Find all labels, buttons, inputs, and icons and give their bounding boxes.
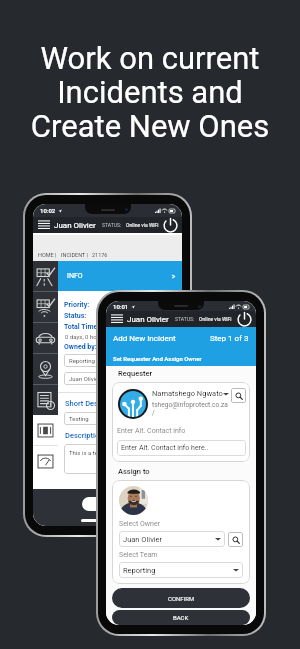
button[interactable]: Custom (82, 497, 134, 511)
button[interactable]: Select Owner (112, 480, 250, 584)
button[interactable]: Menu (106, 311, 256, 327)
staticText: Reporting (123, 566, 156, 575)
button[interactable]: Namatshego Ngwato (112, 382, 250, 462)
staticText: HOME | (38, 252, 57, 258)
button[interactable]: Menu (38, 220, 50, 230)
button[interactable]: Add New Incident (106, 327, 256, 350)
button[interactable]: CONFIRM (112, 588, 250, 608)
staticText: Online via WiFi (199, 316, 232, 322)
staticText: Work on current Incidents and Create New… (0, 40, 300, 144)
staticText: Juan Olivier (127, 315, 169, 324)
button[interactable]: Nav item (33, 292, 58, 322)
staticText: Juan Olivier (69, 375, 101, 382)
staticText: Testing (69, 415, 89, 422)
staticText: Set Requester And Assign Owner (113, 355, 202, 362)
button[interactable]: Nav item (33, 261, 58, 291)
staticText: Juan Olivier (123, 535, 163, 544)
staticText: STATUS: (175, 316, 195, 322)
staticText: This is a test (69, 449, 103, 456)
button[interactable]: Reporting (64, 354, 176, 367)
staticText: INCIDENT | (61, 252, 88, 258)
staticText: Requester (118, 369, 153, 378)
staticText: Step 1 of 3 (210, 334, 249, 343)
staticText: Select Team (119, 551, 158, 559)
button[interactable]: Nav item (33, 385, 58, 415)
staticText: Juan Olivier (54, 221, 96, 230)
button[interactable]: Juan Olivier (64, 372, 176, 385)
staticText: Status: (64, 312, 87, 320)
button[interactable]: Search (228, 532, 243, 547)
button[interactable]: Power (162, 217, 178, 233)
button[interactable]: This is a test (64, 444, 176, 474)
button[interactable]: Menu (33, 217, 182, 233)
staticText: Reporting (69, 357, 95, 364)
button[interactable]: Testing (64, 412, 176, 425)
staticText: / (152, 409, 155, 417)
staticText: Description: (65, 431, 106, 440)
staticText: Enter Alt. Contact info (117, 427, 186, 435)
button[interactable]: Enter Alt. Contact info here.. (117, 440, 246, 456)
button[interactable]: Nav item (33, 415, 58, 445)
button[interactable]: Nav item (33, 354, 58, 384)
staticText: 0 days, 0 hours, 2 m (65, 333, 118, 340)
staticText: CONFIRM (168, 595, 195, 602)
staticText: Enter Alt. Contact info here.. (121, 444, 209, 452)
staticText: STATUS: (102, 222, 122, 228)
staticText: INFO (67, 272, 83, 280)
staticText: Total Time: (64, 323, 100, 331)
button[interactable]: Menu (111, 314, 123, 324)
staticText: Custom (98, 501, 119, 508)
staticText: tshego@infoprotect.co.za (152, 401, 228, 409)
button[interactable]: BACK (112, 610, 250, 625)
staticText: Add New Incident (113, 334, 176, 343)
staticText: Assign to (118, 467, 150, 476)
staticText: Priority: (64, 301, 90, 309)
staticText: Select Owner (119, 520, 160, 528)
staticText: 10:01 (113, 303, 129, 310)
staticText: Online via WiFi (126, 222, 159, 228)
button[interactable]: Search (231, 388, 246, 403)
button[interactable]: Juan Olivier (119, 531, 225, 547)
staticText: 21176 (92, 252, 108, 258)
button[interactable]: INFO (58, 261, 182, 291)
button[interactable]: Nav item (33, 446, 58, 476)
staticText: Short Description: (65, 399, 126, 408)
staticText: BACK (173, 614, 189, 621)
staticText: Owned by: (64, 343, 97, 351)
button[interactable]: Power (236, 311, 252, 327)
button[interactable]: Reporting (119, 562, 243, 578)
staticText: 10:02 (40, 207, 56, 214)
button[interactable]: Nav item (33, 323, 58, 353)
staticText: Namatshego Ngwato (152, 389, 223, 398)
